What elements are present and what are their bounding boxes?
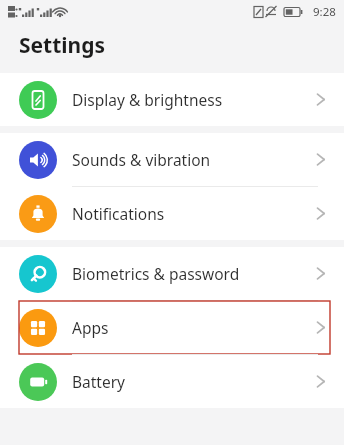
other: Notifications (19, 195, 57, 233)
other: Biometrics and password (19, 255, 57, 293)
staticText: Settings (19, 31, 106, 60)
button[interactable]: Biometrics and password (0, 247, 344, 300)
other: Battery (19, 363, 57, 401)
other: Apps (19, 309, 57, 347)
button[interactable]: Sounds and vibration (0, 133, 344, 186)
button[interactable]: Battery (0, 355, 344, 408)
other: Display and brightness (19, 81, 57, 119)
button[interactable]: Display and brightness (0, 73, 344, 126)
staticText: Biometrics & password (72, 263, 240, 284)
button[interactable]: Apps (0, 301, 344, 354)
staticText: Notifications (72, 203, 165, 224)
staticText: 9:28 (313, 4, 336, 20)
button[interactable]: Notifications (0, 187, 344, 240)
staticText: Battery (72, 371, 126, 392)
other: Sounds and vibration (19, 141, 57, 179)
staticText: Sounds & vibration (72, 149, 211, 170)
staticText: Apps (72, 317, 109, 338)
staticText: Display & brightness (72, 89, 223, 110)
